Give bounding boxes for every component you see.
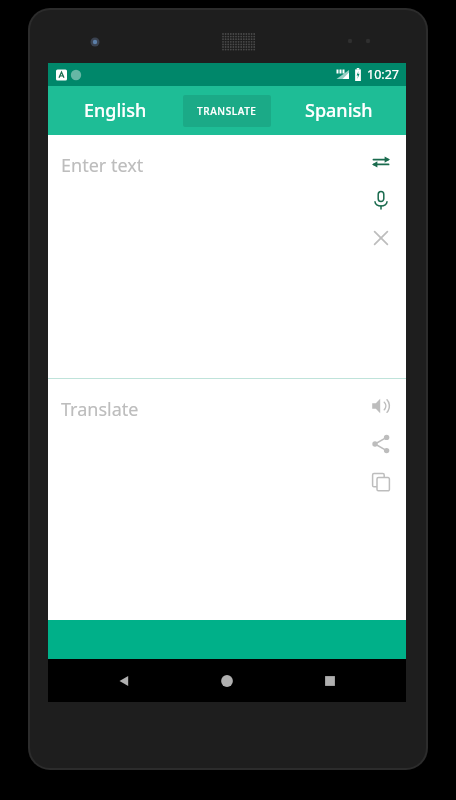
button[interactable]: Swap languages (366, 147, 396, 177)
button[interactable]: Home (200, 659, 254, 702)
button[interactable]: Spanish (271, 86, 406, 135)
button[interactable]: English (48, 86, 183, 135)
button[interactable]: Recent apps (303, 659, 357, 702)
staticText: Spanish (305, 98, 373, 123)
staticText: 10:27 (367, 66, 399, 83)
staticText: Translate (61, 397, 139, 422)
staticText: Enter text (61, 153, 144, 178)
button[interactable]: Listen (366, 391, 396, 421)
button[interactable]: Clear text (366, 223, 396, 253)
staticText: TRANSLATE (197, 104, 257, 118)
staticText: English (84, 98, 147, 123)
button[interactable]: Copy (366, 467, 396, 497)
button[interactable]: TRANSLATE (183, 95, 271, 127)
button[interactable]: Back (97, 659, 151, 702)
button[interactable]: Voice input (366, 185, 396, 215)
button[interactable]: Share (366, 429, 396, 459)
